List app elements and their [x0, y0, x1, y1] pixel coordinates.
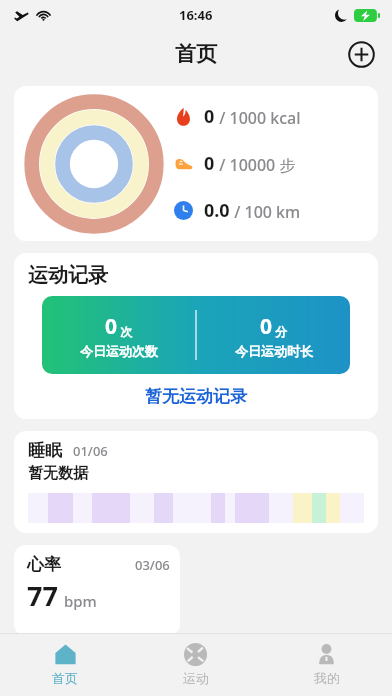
staticText: 0 [105, 312, 118, 341]
staticText: 01/06 [73, 442, 108, 460]
staticText: 次 [120, 324, 132, 339]
staticText: 运动记录 [28, 263, 108, 288]
button[interactable]: Add [344, 37, 378, 71]
staticText: bpm [64, 591, 97, 611]
staticText: 77 [27, 577, 58, 614]
staticText: 今日运动时长 [235, 343, 313, 359]
button[interactable]: 睡眠 [14, 431, 378, 533]
staticText: 0.0 [204, 198, 230, 223]
staticText: 分 [275, 324, 287, 339]
staticText: / 10000 步 [215, 154, 296, 176]
staticText: 暂无数据 [28, 464, 88, 483]
staticText: 0 [260, 312, 273, 341]
staticText: 运动 [183, 670, 209, 686]
staticText: / 100 km [230, 201, 301, 223]
button[interactable]: 暂无运动记录 [139, 384, 253, 409]
staticText: 首页 [52, 670, 78, 686]
button[interactable]: 心率 [14, 545, 180, 636]
staticText: 03/06 [135, 556, 170, 574]
button[interactable]: 0 [14, 86, 378, 241]
staticText: 首页 [175, 41, 217, 67]
staticText: / 1000 kcal [215, 107, 301, 129]
staticText: 睡眠 [28, 440, 62, 461]
button[interactable]: 我的 [261, 634, 392, 696]
staticText: 0 [204, 104, 215, 129]
button[interactable]: 首页 [0, 634, 130, 696]
button[interactable]: 运动记录 [14, 253, 378, 419]
staticText: 0 [204, 151, 215, 176]
staticText: 16:46 [179, 6, 213, 24]
staticText: 今日运动次数 [80, 343, 158, 359]
staticText: 我的 [314, 670, 340, 686]
staticText: 心率 [27, 554, 61, 575]
button[interactable]: 运动 [130, 634, 261, 696]
